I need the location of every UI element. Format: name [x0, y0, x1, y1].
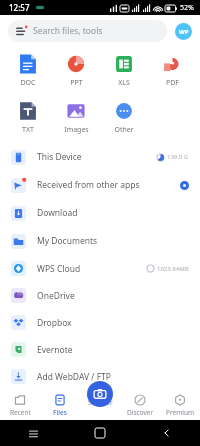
button[interactable]: TXT: [4, 98, 52, 137]
button[interactable]: OneDrive: [0, 282, 200, 309]
staticText: OneDrive: [37, 290, 75, 302]
button[interactable]: Files: [40, 390, 80, 420]
staticText: Download: [37, 207, 78, 219]
button[interactable]: Other: [100, 98, 148, 137]
button[interactable]: PDF: [148, 51, 196, 90]
button[interactable]: XLS: [100, 51, 148, 90]
button[interactable]: DOC: [4, 51, 52, 90]
staticText: Files: [53, 408, 67, 417]
button[interactable]: Premium: [160, 390, 200, 420]
staticText: 139.0 G: [167, 153, 189, 161]
staticText: TXT: [22, 125, 34, 135]
staticText: Other: [114, 125, 134, 135]
staticText: Recent: [10, 408, 31, 417]
staticText: Received from other apps: [37, 179, 140, 191]
staticText: 12:57: [9, 2, 30, 13]
staticText: Scanner: [88, 398, 113, 407]
staticText: 52%: [180, 3, 194, 13]
button[interactable]: Add WebDAV / FTP: [0, 363, 200, 390]
staticText: 1023.94MB: [157, 265, 189, 273]
button[interactable]: PPT: [52, 51, 100, 90]
staticText: Search files, tools: [33, 25, 103, 37]
staticText: Dropbox: [37, 317, 72, 329]
button[interactable]: Dropbox: [0, 309, 200, 336]
button[interactable]: This Device: [0, 143, 200, 171]
button[interactable]: Evernote: [0, 336, 200, 363]
button[interactable]: WPS Cloud: [0, 255, 200, 282]
staticText: Discover: [127, 408, 154, 417]
button[interactable]: Received from other apps: [0, 171, 200, 199]
button[interactable]: Download: [0, 199, 200, 227]
staticText: Evernote: [37, 344, 73, 356]
button[interactable]: Images: [52, 98, 100, 137]
staticText: XLS: [118, 78, 130, 88]
button[interactable]: Discover: [120, 390, 160, 420]
staticText: Premium: [166, 408, 195, 417]
button[interactable]: Menu: [8, 20, 167, 42]
staticText: This Device: [37, 151, 82, 163]
button[interactable]: Account: [175, 23, 192, 40]
button[interactable]: Home: [66, 420, 133, 446]
other: Menu: [15, 25, 28, 38]
staticText: DOC: [20, 78, 36, 88]
button[interactable]: Recent: [0, 390, 40, 420]
staticText: WPS Cloud: [37, 263, 81, 275]
staticText: My Documents: [37, 235, 98, 247]
staticText: Add WebDAV / FTP: [37, 371, 111, 383]
button[interactable]: Recents: [0, 420, 66, 446]
staticText: WP: [179, 28, 189, 36]
staticText: PPT: [70, 78, 83, 88]
staticText: PDF: [166, 78, 179, 88]
staticText: Images: [64, 125, 89, 135]
button[interactable]: Scanner: [87, 381, 113, 407]
button[interactable]: Back: [133, 420, 200, 446]
button[interactable]: My Documents: [0, 227, 200, 255]
